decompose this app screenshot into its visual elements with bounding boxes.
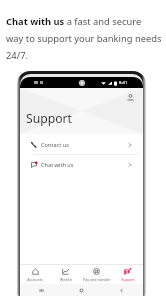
staticText: Chat with us xyxy=(41,161,74,169)
button[interactable]: Accounts xyxy=(20,268,50,282)
button[interactable]: Profile xyxy=(125,92,136,103)
staticText: Support xyxy=(121,277,135,282)
staticText: Accounts xyxy=(27,277,43,282)
button[interactable]: Wealth xyxy=(50,268,81,282)
staticText: Support xyxy=(26,110,73,127)
staticText: Contact us xyxy=(41,141,69,149)
button[interactable]: Contact us xyxy=(25,135,138,154)
staticText: Chat with us a fast and secure way to su… xyxy=(6,15,162,62)
button[interactable]: Chat with us xyxy=(25,155,138,174)
staticText: Wealth xyxy=(60,277,72,282)
button[interactable]: Pay and transfer xyxy=(81,268,112,282)
staticText: Pay and transfer xyxy=(83,277,111,282)
button[interactable]: Support xyxy=(112,268,143,282)
staticText: 8:41 xyxy=(119,80,128,86)
